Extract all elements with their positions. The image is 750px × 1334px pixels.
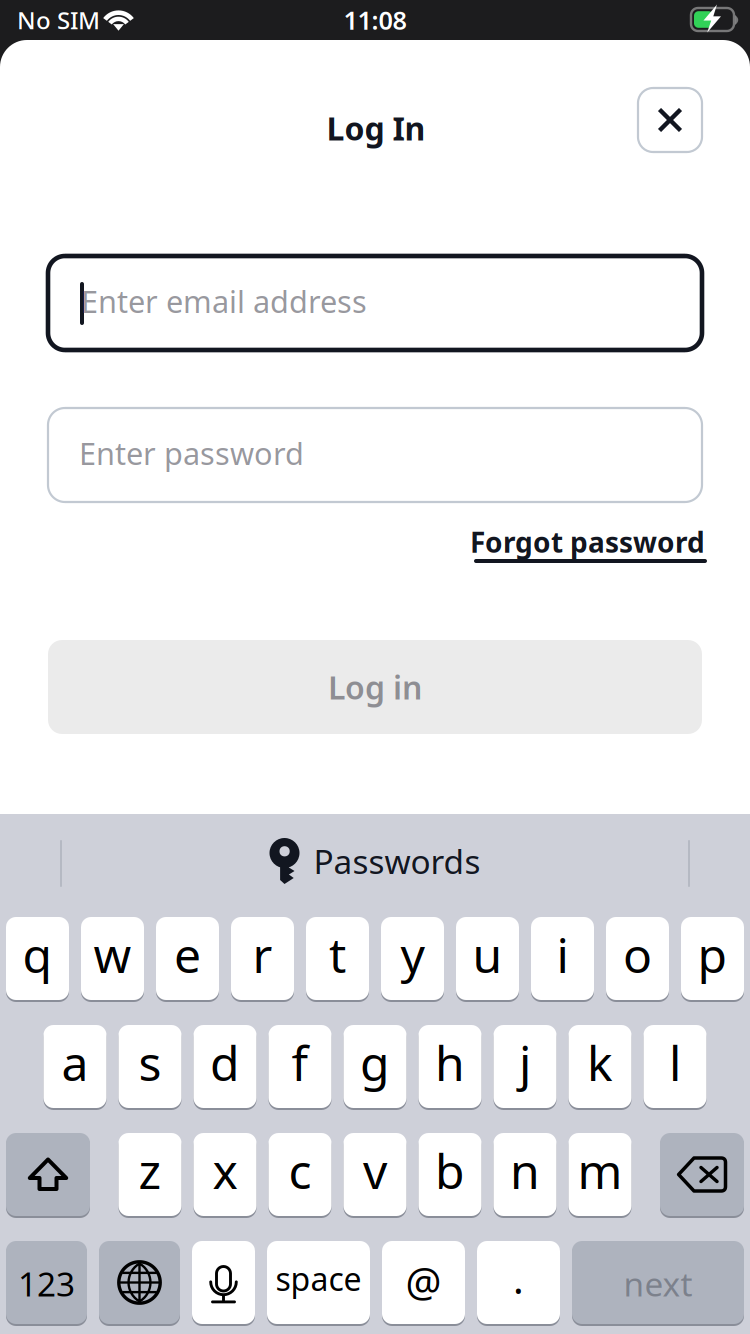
button[interactable]: . bbox=[477, 1241, 560, 1326]
staticText: h bbox=[435, 1031, 465, 1094]
staticText: r bbox=[252, 923, 272, 986]
staticText: space bbox=[275, 1257, 361, 1300]
button[interactable]: Delete bbox=[660, 1133, 744, 1218]
staticText: next bbox=[623, 1261, 692, 1306]
button[interactable]: s bbox=[118, 1025, 181, 1110]
button[interactable]: next bbox=[572, 1241, 744, 1326]
staticText: q bbox=[22, 923, 52, 986]
staticText: p bbox=[697, 923, 727, 986]
staticText: m bbox=[577, 1139, 622, 1202]
button[interactable]: q bbox=[6, 917, 69, 1002]
button[interactable]: u bbox=[456, 917, 519, 1002]
staticText: x bbox=[212, 1139, 237, 1202]
staticText: y bbox=[400, 923, 424, 986]
staticText: v bbox=[363, 1139, 387, 1202]
staticText: c bbox=[288, 1139, 311, 1202]
staticText: Passwords bbox=[313, 839, 480, 883]
button[interactable]: @ bbox=[382, 1241, 465, 1326]
button[interactable]: z bbox=[118, 1133, 181, 1218]
staticText: s bbox=[138, 1031, 161, 1094]
button[interactable]: x bbox=[193, 1133, 256, 1218]
staticText: a bbox=[61, 1031, 88, 1094]
staticText: b bbox=[435, 1139, 465, 1202]
staticText: j bbox=[519, 1031, 531, 1094]
staticText: u bbox=[472, 923, 502, 986]
staticText: k bbox=[587, 1031, 613, 1094]
staticText: w bbox=[93, 923, 131, 986]
button[interactable]: p bbox=[681, 917, 744, 1002]
button[interactable]: k bbox=[568, 1025, 631, 1110]
button[interactable]: r bbox=[231, 917, 294, 1002]
button[interactable]: m bbox=[568, 1133, 631, 1218]
staticText: @ bbox=[405, 1255, 441, 1308]
button[interactable]: Shift bbox=[6, 1133, 90, 1218]
button[interactable]: w bbox=[81, 917, 144, 1002]
staticText: z bbox=[138, 1139, 161, 1202]
button[interactable]: d bbox=[193, 1025, 256, 1110]
button[interactable]: Passwords bbox=[220, 836, 530, 886]
staticText: 11:08 bbox=[343, 3, 406, 37]
staticText: Log in bbox=[328, 666, 422, 708]
button[interactable]: t bbox=[306, 917, 369, 1002]
button[interactable]: Close bbox=[638, 88, 702, 152]
button[interactable]: Forgot password bbox=[458, 523, 708, 571]
staticText: No SIM bbox=[17, 4, 100, 36]
staticText: o bbox=[623, 923, 652, 986]
button[interactable]: o bbox=[606, 917, 669, 1002]
button[interactable]: l bbox=[643, 1025, 706, 1110]
staticText: l bbox=[669, 1031, 681, 1094]
button[interactable]: a bbox=[43, 1025, 106, 1110]
button[interactable]: i bbox=[531, 917, 594, 1002]
button[interactable]: 123 bbox=[6, 1241, 87, 1326]
staticText: Enter password bbox=[79, 433, 304, 473]
button[interactable]: Next keyboard bbox=[99, 1241, 180, 1326]
button[interactable]: j bbox=[493, 1025, 556, 1110]
staticText: . bbox=[513, 1252, 524, 1305]
staticText: Forgot password bbox=[470, 523, 705, 561]
staticText: t bbox=[329, 923, 346, 986]
button[interactable]: n bbox=[493, 1133, 556, 1218]
staticText: n bbox=[510, 1139, 540, 1202]
staticText: i bbox=[556, 923, 568, 986]
button[interactable]: b bbox=[418, 1133, 481, 1218]
button[interactable]: Log in bbox=[48, 640, 702, 734]
staticText: e bbox=[174, 923, 201, 986]
staticText: g bbox=[360, 1031, 390, 1094]
button[interactable]: c bbox=[268, 1133, 331, 1218]
button[interactable]: v bbox=[343, 1133, 406, 1218]
button[interactable]: y bbox=[381, 917, 444, 1002]
button[interactable]: Dictation bbox=[192, 1241, 255, 1326]
staticText: f bbox=[291, 1031, 308, 1094]
staticText: Log In bbox=[326, 107, 425, 149]
staticText: Enter email address bbox=[81, 281, 367, 321]
button[interactable]: g bbox=[343, 1025, 406, 1110]
button[interactable]: e bbox=[156, 917, 219, 1002]
staticText: 123 bbox=[18, 1261, 75, 1306]
staticText: d bbox=[210, 1031, 240, 1094]
button[interactable]: space bbox=[267, 1241, 370, 1326]
button[interactable]: h bbox=[418, 1025, 481, 1110]
button[interactable]: f bbox=[268, 1025, 331, 1110]
